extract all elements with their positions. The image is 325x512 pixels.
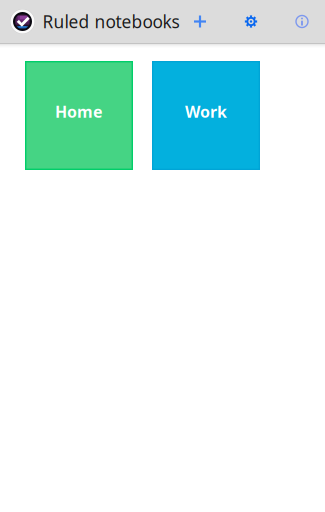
staticText: Ruled notebooks [42, 10, 179, 33]
staticText: Home [55, 101, 103, 122]
button[interactable]: About [281, 0, 322, 43]
button[interactable]: Home [25, 61, 133, 170]
staticText: Work [185, 101, 227, 122]
button[interactable]: Settings [230, 0, 271, 43]
button[interactable]: Work [152, 61, 260, 170]
button[interactable]: New notebook [179, 0, 220, 43]
button[interactable]: Ruled notebooks [0, 0, 179, 43]
